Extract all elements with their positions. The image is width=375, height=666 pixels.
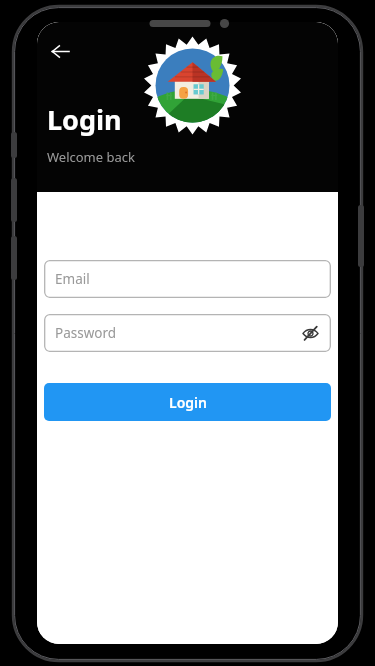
button[interactable]: Back (40, 31, 80, 71)
staticText: Welcome back (47, 148, 135, 166)
staticText: Password (55, 324, 117, 342)
staticText: Email (55, 270, 90, 288)
staticText: Login (47, 101, 122, 138)
button[interactable]: Login (44, 383, 331, 421)
button[interactable]: Email (44, 260, 331, 298)
button[interactable]: Toggle password visibility (299, 322, 321, 344)
button[interactable]: Password (44, 314, 331, 352)
staticText: Login (169, 393, 207, 412)
